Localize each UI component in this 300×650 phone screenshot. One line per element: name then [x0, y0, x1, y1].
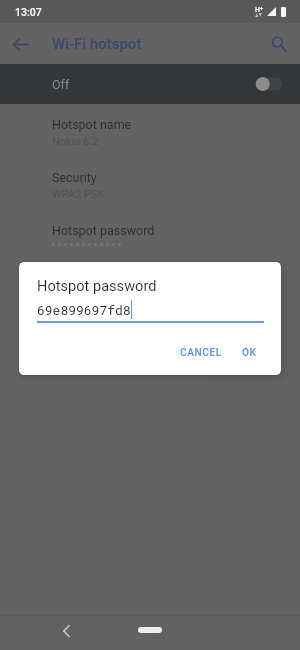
button[interactable]: Back [54, 619, 78, 643]
staticText: Hotspot name [52, 117, 132, 132]
button[interactable]: Search [262, 27, 296, 61]
button[interactable]: Security [0, 161, 300, 214]
staticText: H [255, 6, 260, 14]
staticText: 13:07 [15, 6, 42, 18]
staticText: Nokia 6.2 [52, 135, 99, 148]
button[interactable]: OK [236, 342, 263, 364]
staticText: Hotspot password [37, 277, 157, 294]
staticText: Hotspot password [52, 223, 155, 238]
staticText: CANCEL [180, 347, 222, 359]
staticText: Off [52, 77, 70, 92]
staticText: Security [52, 170, 97, 185]
staticText: Wi-Fi hotspot [52, 35, 142, 53]
button[interactable]: Off [0, 64, 300, 104]
button[interactable]: CANCEL [174, 342, 228, 364]
button[interactable]: Home [138, 627, 162, 633]
staticText: 2.4 GHz Band [52, 294, 119, 307]
staticText: WPA2 PSK [52, 188, 105, 201]
staticText: 69e899697fd8 [37, 301, 131, 318]
button[interactable]: Navigate up [3, 27, 37, 61]
button[interactable]: Hotspot password [0, 214, 300, 267]
staticText: OK [242, 347, 257, 359]
button[interactable]: AP Band [0, 267, 300, 320]
staticText: AP Band [52, 276, 100, 291]
button[interactable]: Hotspot name [0, 108, 300, 161]
